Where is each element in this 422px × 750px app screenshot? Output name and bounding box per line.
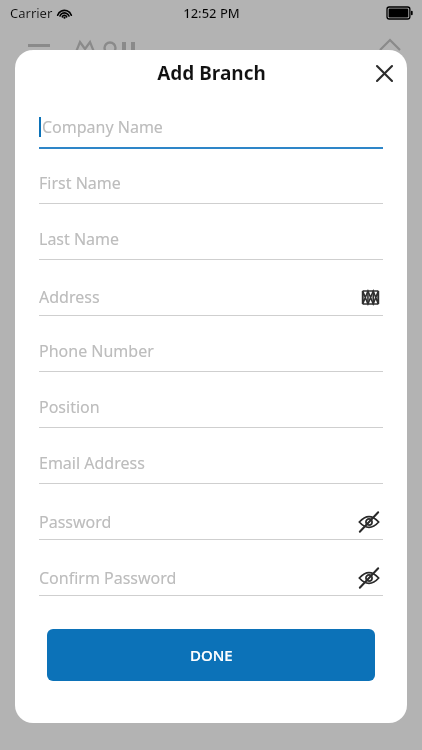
button[interactable]: Close (368, 57, 400, 89)
button[interactable]: Show password (355, 508, 383, 536)
button[interactable]: DONE (47, 629, 375, 681)
button[interactable]: Phone Number (39, 331, 383, 387)
staticText: First Name (39, 172, 383, 194)
button[interactable]: Email Address (39, 443, 383, 499)
button[interactable]: Pick location on map (357, 284, 383, 310)
button[interactable]: Company Name (39, 107, 383, 163)
staticText: Address (39, 286, 357, 308)
staticText: Email Address (39, 452, 383, 474)
button[interactable]: Position (39, 387, 383, 443)
staticText: Company Name (42, 116, 383, 138)
button[interactable]: Confirm Password (39, 555, 383, 611)
button[interactable]: Show password (355, 564, 383, 592)
staticText: Phone Number (39, 340, 383, 362)
button[interactable]: Last Name (39, 219, 383, 275)
button[interactable]: Password (39, 499, 383, 555)
staticText: DONE (190, 645, 233, 665)
button[interactable]: Address (39, 275, 383, 331)
staticText: Last Name (39, 228, 383, 250)
staticText: 12:52 PM (183, 4, 240, 22)
staticText: Password (39, 511, 355, 533)
button[interactable]: First Name (39, 163, 383, 219)
staticText: Add Branch (157, 60, 266, 86)
staticText: Carrier (10, 4, 53, 22)
staticText: Position (39, 396, 383, 418)
staticText: Confirm Password (39, 567, 355, 589)
